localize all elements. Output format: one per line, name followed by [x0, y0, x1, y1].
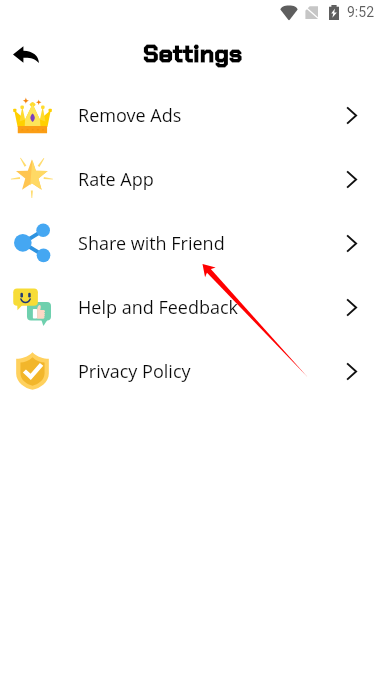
- staticText: Settings: [143, 38, 243, 70]
- staticText: Remove Ads: [78, 103, 182, 128]
- staticText: 9:52: [347, 4, 374, 20]
- button[interactable]: Help and Feedback: [0, 276, 384, 340]
- button[interactable]: Rate App: [0, 148, 384, 212]
- staticText: Help and Feedback: [78, 295, 238, 320]
- button[interactable]: Share with Friend: [0, 212, 384, 276]
- staticText: Share with Friend: [78, 231, 225, 256]
- button[interactable]: Remove Ads: [0, 84, 384, 148]
- staticText: Rate App: [78, 167, 154, 192]
- button[interactable]: Privacy Policy: [0, 340, 384, 404]
- button[interactable]: Back: [4, 33, 48, 75]
- staticText: Privacy Policy: [78, 359, 191, 384]
